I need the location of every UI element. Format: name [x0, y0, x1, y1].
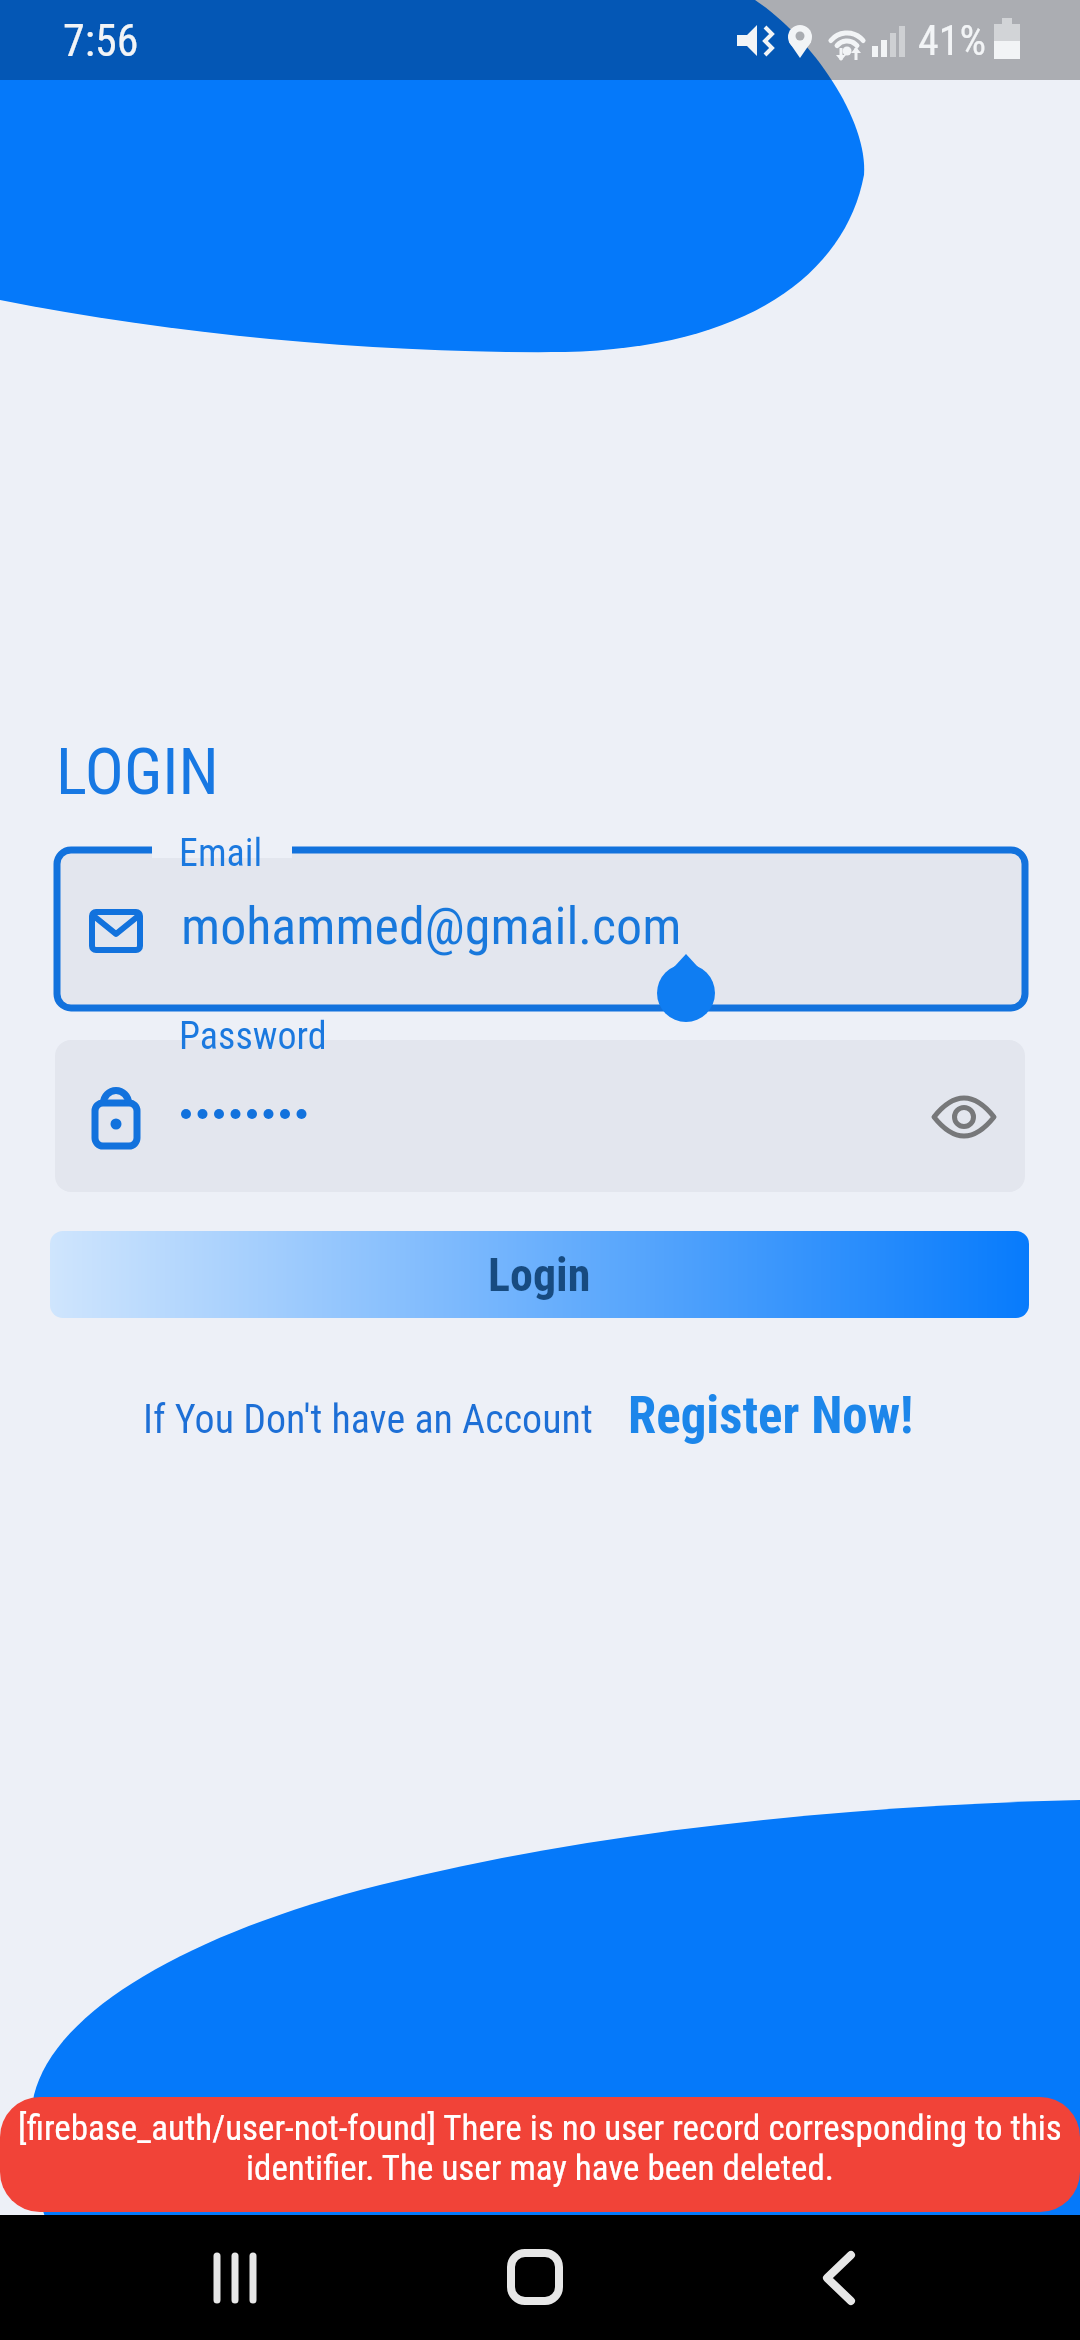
- staticText: Email: [179, 831, 263, 876]
- button[interactable]: [170, 2230, 300, 2330]
- staticText: Login: [488, 1248, 591, 1302]
- button[interactable]: Login: [50, 1231, 1029, 1318]
- staticText: mohammed@gmail.com: [181, 896, 682, 957]
- button[interactable]: [775, 2230, 905, 2330]
- staticText: 41%: [918, 16, 987, 65]
- button[interactable]: [925, 1085, 1000, 1150]
- staticText: Password: [179, 1014, 327, 1059]
- button[interactable]: [470, 2230, 600, 2330]
- staticText: If You Don't have an Account: [143, 1396, 593, 1443]
- staticText: Register Now!: [628, 1386, 914, 1446]
- button[interactable]: Register Now!: [628, 1386, 914, 1446]
- staticText: identifier. The user may have been delet…: [246, 2148, 835, 2189]
- staticText: 7:56: [63, 15, 139, 67]
- staticText: [firebase_auth/user-not-found] There is …: [18, 2108, 1062, 2149]
- staticText: LOGIN: [56, 734, 219, 810]
- button[interactable]: [55, 1040, 1025, 1192]
- button[interactable]: [57, 850, 1025, 1008]
